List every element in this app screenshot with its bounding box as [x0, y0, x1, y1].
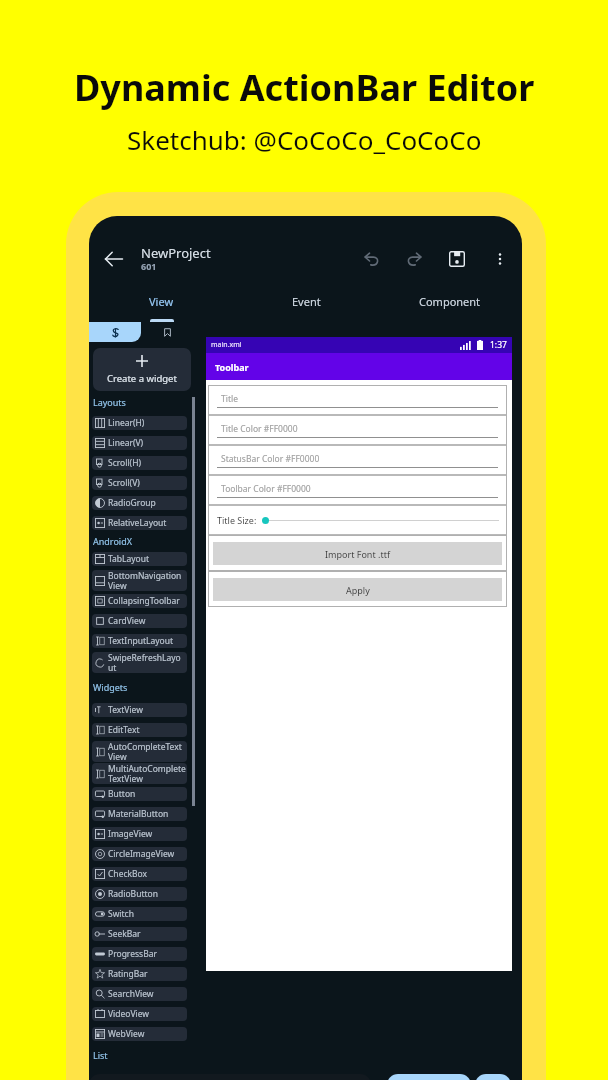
button[interactable]: WebView: [92, 1027, 187, 1041]
button[interactable]: Run project: [387, 1074, 471, 1080]
staticText: ImageView: [108, 828, 153, 840]
staticText: Title Color #FF0000: [221, 423, 298, 435]
staticText: AutoCompleteText View: [108, 741, 182, 762]
button[interactable]: View: [89, 288, 234, 322]
staticText: Linear(V): [108, 437, 144, 449]
button[interactable]: VideoView: [92, 1007, 187, 1021]
button[interactable]: CardView: [92, 614, 187, 628]
staticText: EditText: [108, 724, 140, 736]
button[interactable]: Undo: [357, 245, 385, 273]
staticText: Component: [419, 294, 481, 309]
button[interactable]: SeekBar: [92, 927, 187, 941]
staticText: SwipeRefreshLayo ut: [108, 652, 181, 673]
button[interactable]: TextView: [92, 703, 187, 717]
button[interactable]: MultiAutoComplete TextView: [92, 763, 187, 784]
staticText: TextView: [108, 704, 143, 716]
button[interactable]: ProgressBar: [92, 947, 187, 961]
button[interactable]: MaterialButton: [92, 807, 187, 821]
staticText: Import Font .ttf: [325, 548, 391, 560]
staticText: CheckBox: [108, 868, 148, 880]
button[interactable]: Redo: [400, 245, 428, 273]
button[interactable]: Linear(H): [92, 416, 187, 430]
staticText: SearchView: [108, 988, 154, 1000]
staticText: 1:37: [490, 339, 507, 351]
staticText: Toolbar: [215, 361, 249, 373]
button[interactable]: BottomNavigation View: [92, 570, 187, 591]
staticText: Apply: [346, 584, 370, 596]
staticText: Dynamic ActionBar Editor: [74, 63, 535, 112]
staticText: Scroll(V): [108, 477, 140, 489]
staticText: WebView: [108, 1028, 145, 1040]
staticText: StatusBar Color #FF0000: [221, 453, 320, 465]
button[interactable]: RatingBar: [92, 967, 187, 981]
staticText: Scroll(H): [108, 457, 142, 469]
staticText: main.xml: [211, 340, 242, 350]
button[interactable]: CheckBox: [92, 867, 187, 881]
button[interactable]: RelativeLayout: [92, 516, 187, 530]
button[interactable]: CollapsingToolbar: [92, 594, 187, 608]
button[interactable]: Switch: [92, 907, 187, 921]
staticText: Layouts: [93, 396, 126, 408]
button[interactable]: SwipeRefreshLayo ut: [92, 652, 187, 673]
staticText: Sketchub: @CoCoCo_CoCoCo: [127, 122, 482, 157]
button[interactable]: Favourites: [141, 322, 193, 342]
button[interactable]: Create a widget: [93, 348, 191, 391]
button[interactable]: TextInputLayout: [92, 634, 187, 648]
staticText: Button: [108, 788, 136, 800]
button[interactable]: AutoCompleteText View: [92, 741, 187, 762]
button[interactable]: More actions: [475, 1074, 511, 1080]
staticText: TextInputLayout: [108, 635, 174, 647]
button[interactable]: Button: [92, 787, 187, 801]
button[interactable]: Scroll(V): [92, 476, 187, 490]
staticText: MultiAutoComplete TextView: [108, 763, 186, 784]
staticText: AndroidX: [93, 535, 132, 547]
staticText: SeekBar: [108, 928, 141, 940]
staticText: Title: [221, 393, 238, 405]
staticText: RadioButton: [108, 888, 158, 900]
staticText: TabLayout: [108, 553, 150, 565]
button[interactable]: Apply: [213, 578, 502, 601]
staticText: View: [149, 294, 174, 309]
staticText: 601: [141, 260, 157, 272]
button[interactable]: Save: [443, 245, 471, 273]
button[interactable]: SearchView: [92, 987, 187, 1001]
button[interactable]: RadioGroup: [92, 496, 187, 510]
staticText: MaterialButton: [108, 808, 169, 820]
button[interactable]: More options: [486, 245, 514, 273]
staticText: RadioGroup: [108, 497, 156, 509]
button[interactable]: Event: [234, 288, 378, 322]
staticText: Create a widget: [107, 372, 177, 385]
button[interactable]: EditText: [92, 723, 187, 737]
staticText: Switch: [108, 908, 134, 920]
button[interactable]: ImageView: [92, 827, 187, 841]
staticText: CircleImageView: [108, 848, 175, 860]
staticText: Widgets: [93, 681, 128, 693]
button[interactable]: Linear(V): [92, 436, 187, 450]
staticText: Title Size:: [217, 514, 257, 526]
staticText: Toolbar Color #FF0000: [221, 483, 311, 495]
button[interactable]: RadioButton: [92, 887, 187, 901]
button[interactable]: Scroll(H): [92, 456, 187, 470]
staticText: BottomNavigation View: [108, 570, 182, 591]
button[interactable]: CircleImageView: [92, 847, 187, 861]
staticText: RatingBar: [108, 968, 148, 980]
staticText: List: [93, 1049, 108, 1061]
button[interactable]: Widget palette: [89, 322, 141, 342]
button[interactable]: Component: [378, 288, 522, 322]
staticText: NewProject: [141, 244, 211, 262]
button[interactable]: Back: [97, 242, 130, 275]
staticText: ProgressBar: [108, 948, 157, 960]
staticText: CollapsingToolbar: [108, 595, 180, 607]
staticText: VideoView: [108, 1008, 150, 1020]
button[interactable]: Import Font .ttf: [213, 542, 502, 565]
staticText: Event: [292, 294, 321, 309]
staticText: Linear(H): [108, 417, 145, 429]
button[interactable]: TabLayout: [92, 552, 187, 566]
staticText: RelativeLayout: [108, 517, 167, 529]
staticText: CardView: [108, 615, 146, 627]
